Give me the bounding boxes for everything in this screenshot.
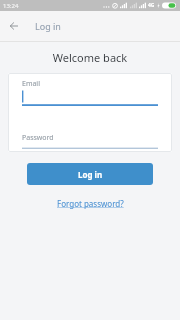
staticText: 13:24 (3, 2, 19, 10)
staticText: Password (22, 133, 54, 143)
staticText: 4G (148, 2, 155, 9)
button[interactable]: Forgot password? (57, 198, 124, 209)
staticText: Forgot password? (57, 198, 124, 209)
button[interactable]: Log in (27, 163, 153, 185)
button[interactable] (22, 143, 158, 149)
staticText: Welcome back (0, 50, 180, 65)
button[interactable] (22, 89, 158, 106)
staticText: Log in (35, 20, 61, 32)
staticText: Log in (78, 169, 103, 180)
staticText: Email (22, 79, 40, 89)
button[interactable] (0, 11, 28, 41)
